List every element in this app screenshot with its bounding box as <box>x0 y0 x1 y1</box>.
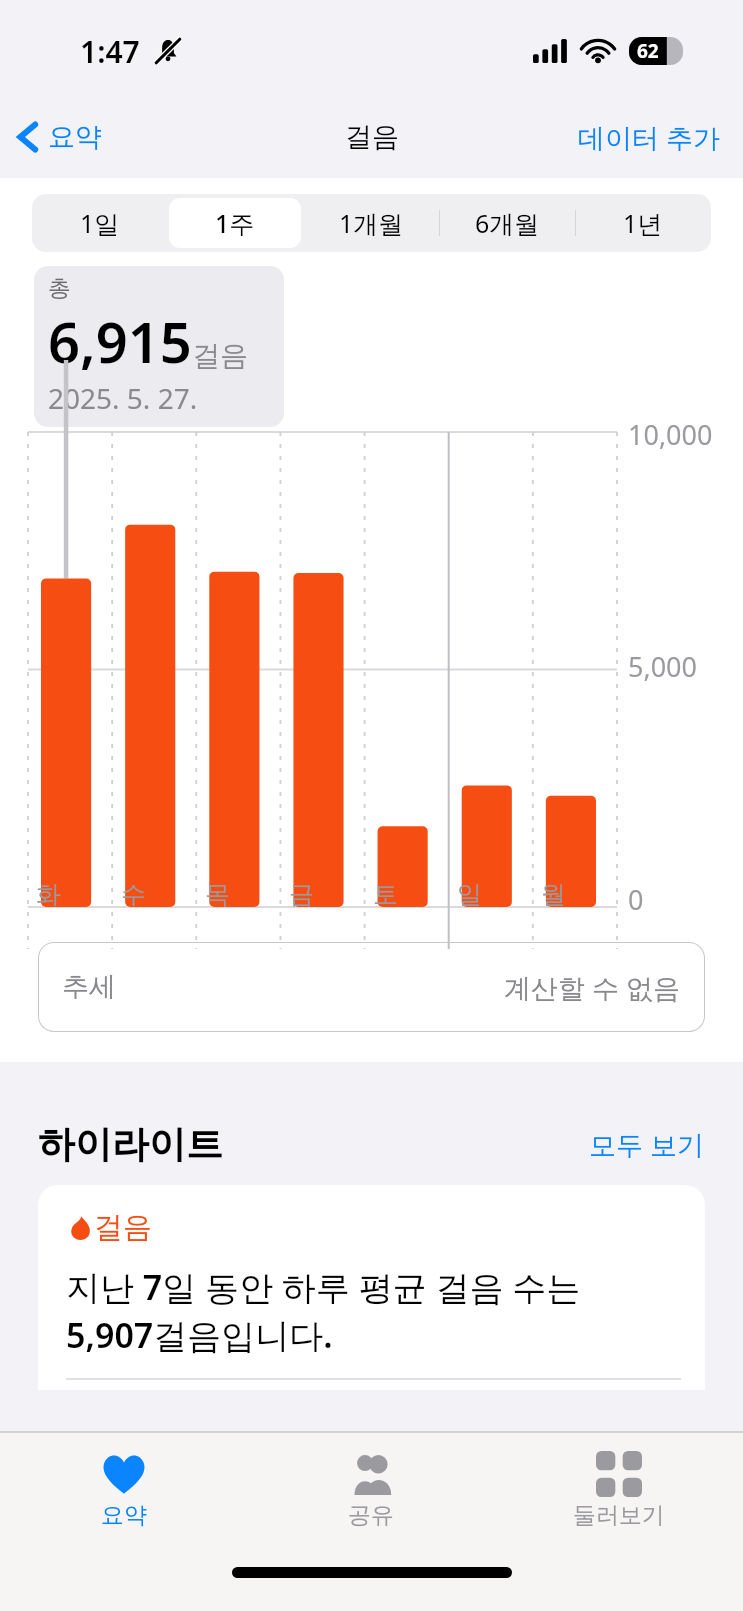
staticText: 추세 <box>62 970 116 1004</box>
staticText: 목 <box>205 879 230 910</box>
button[interactable]: 둘러보기 <box>495 1433 743 1549</box>
staticText: 둘러보기 <box>573 1501 665 1530</box>
button[interactable]: 1일 <box>32 194 167 252</box>
button[interactable]: 요약 <box>0 110 116 164</box>
button[interactable]: 추세 <box>38 942 705 1032</box>
button[interactable]: 공유 <box>247 1433 495 1549</box>
staticText: 5,000 <box>628 648 698 685</box>
staticText: 수 <box>121 879 146 910</box>
staticText: 6개월 <box>475 206 540 240</box>
button[interactable]: 1주 <box>167 194 303 252</box>
staticText: 2025. 5. 27. <box>48 379 198 417</box>
staticText: 금 <box>289 879 314 910</box>
staticText: 10,000 <box>628 416 713 453</box>
staticText: 하이라이트 <box>38 1121 223 1168</box>
other: Silent mode <box>154 37 182 65</box>
button[interactable]: 1년 <box>575 194 711 252</box>
button[interactable]: 걸음 <box>38 1185 705 1390</box>
staticText: 0 <box>628 881 644 918</box>
staticText: 토 <box>373 879 398 910</box>
staticText: 지난 7일 동안 하루 평균 걸음 수는 5,907걸음입니다. <box>66 1264 581 1358</box>
staticText: 6,915 <box>48 303 192 379</box>
staticText: 일 <box>457 879 482 910</box>
staticText: 공유 <box>348 1501 394 1530</box>
staticText: 62 <box>637 38 659 64</box>
button[interactable]: 요약 <box>0 1433 247 1549</box>
staticText: 1일 <box>80 206 120 240</box>
staticText: 1개월 <box>339 206 404 240</box>
staticText: 요약 <box>48 120 102 154</box>
staticText: 월 <box>541 879 566 910</box>
staticText: 1년 <box>623 206 663 240</box>
staticText: 1주 <box>215 206 255 240</box>
button[interactable]: 1개월 <box>303 194 439 252</box>
staticText: 걸음 <box>94 1209 152 1246</box>
staticText: 1:47 <box>80 31 140 72</box>
staticText: 요약 <box>101 1501 147 1530</box>
staticText: 계산할 수 없음 <box>504 969 681 1006</box>
staticText: 걸음 <box>345 120 399 154</box>
button[interactable]: 6개월 <box>439 194 575 252</box>
button[interactable]: 모두 보기 <box>583 1118 711 1171</box>
button[interactable]: 데이터 추가 <box>556 109 743 166</box>
staticText: 총 <box>48 274 71 303</box>
staticText: 화 <box>36 879 61 910</box>
staticText: 걸음 <box>192 338 248 373</box>
